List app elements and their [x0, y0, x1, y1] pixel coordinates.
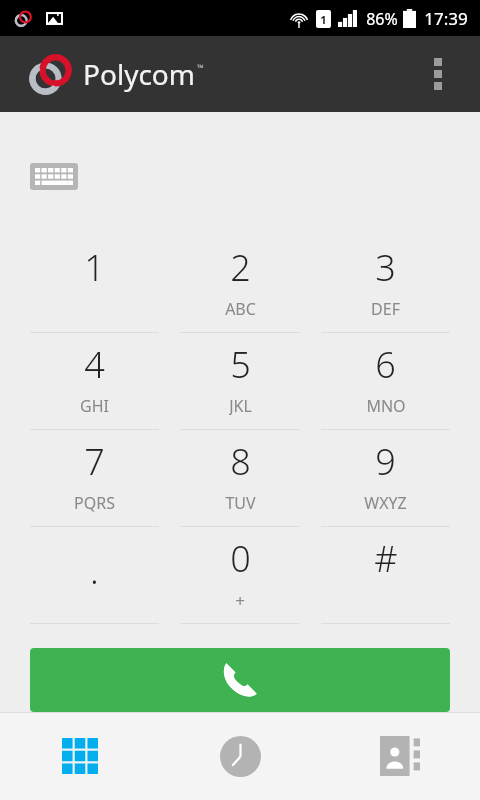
staticText: 9 — [375, 437, 396, 486]
staticText: 7 — [84, 437, 105, 486]
staticText: . — [90, 546, 99, 595]
staticText: 5 — [230, 340, 251, 389]
button[interactable]: Contacts — [320, 712, 480, 800]
staticText: WXYZ — [364, 492, 407, 512]
button[interactable]: Call — [30, 648, 450, 712]
staticText: DEF — [371, 298, 400, 318]
button[interactable]: Show keyboard — [30, 163, 78, 190]
staticText: 3 — [375, 243, 396, 292]
button[interactable]: 6 — [321, 333, 450, 430]
button[interactable]: . — [30, 527, 159, 624]
button[interactable]: Dialpad — [0, 712, 160, 800]
staticText: 6 — [375, 340, 396, 389]
button[interactable]: 4 — [30, 333, 159, 430]
staticText: + — [235, 589, 245, 609]
staticText: PQRS — [74, 492, 115, 512]
staticText: GHI — [80, 395, 109, 415]
staticText: 4 — [84, 340, 105, 389]
staticText: TUV — [225, 492, 256, 512]
button[interactable]: More options — [414, 50, 462, 98]
staticText: MNO — [366, 395, 406, 415]
button[interactable]: # — [321, 527, 450, 624]
staticText: 0 — [230, 534, 251, 583]
staticText: 2 — [230, 243, 251, 292]
button[interactable]: 2 — [181, 236, 299, 333]
staticText: 1 — [320, 12, 327, 27]
staticText: # — [374, 534, 398, 583]
staticText: 17:39 — [424, 7, 468, 30]
button[interactable]: 7 — [30, 430, 159, 527]
staticText: 86% — [366, 8, 398, 30]
staticText: 8 — [230, 437, 251, 486]
button[interactable]: 1 — [30, 236, 159, 333]
button[interactable]: Recents — [160, 712, 320, 800]
button[interactable]: 9 — [321, 430, 450, 527]
staticText: ABC — [225, 298, 256, 318]
staticText: JKL — [229, 395, 252, 415]
staticText: 1 — [84, 243, 105, 292]
button[interactable]: 3 — [321, 236, 450, 333]
staticText: Polycom — [83, 55, 195, 93]
staticText: ™ — [197, 61, 204, 73]
button[interactable]: 8 — [181, 430, 299, 527]
button[interactable]: 5 — [181, 333, 299, 430]
button[interactable]: 0 — [181, 527, 299, 624]
